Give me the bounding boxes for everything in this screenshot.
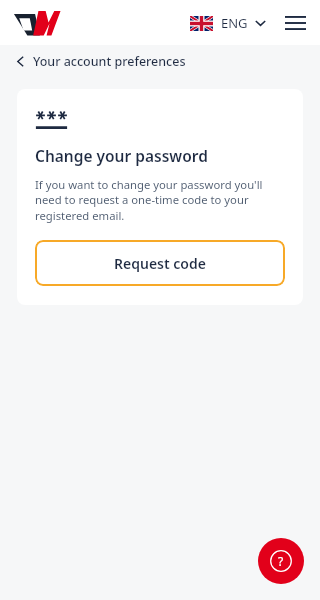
staticText: ? <box>278 553 284 569</box>
button[interactable]: Menu <box>279 7 311 39</box>
staticText: Change your password <box>35 145 208 166</box>
button[interactable]: Your account preferences <box>0 45 320 78</box>
staticText: Request code <box>114 254 206 273</box>
button[interactable]: Help <box>258 538 304 584</box>
button[interactable]: Request code <box>35 240 285 286</box>
staticText: If you want to change your password you'… <box>35 177 285 223</box>
button[interactable]: ENG <box>187 9 269 37</box>
staticText: ENG <box>221 14 248 32</box>
button[interactable]: Home <box>13 8 61 38</box>
staticText: Your account preferences <box>33 53 186 70</box>
